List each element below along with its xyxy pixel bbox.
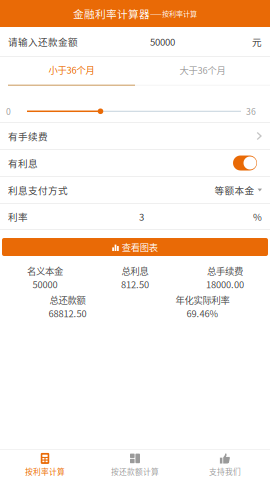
staticText: 36 (246, 105, 256, 117)
staticText: 68812.50 (48, 306, 86, 320)
button[interactable]: 按还款额计算 (90, 453, 180, 477)
staticText: 18000.00 (206, 277, 244, 291)
staticText: 等额本金 (215, 183, 255, 197)
staticText: 812.50 (121, 277, 149, 291)
staticText: 0 (6, 105, 11, 117)
staticText: 按利率计算 (25, 466, 65, 477)
staticText: 69.46% (186, 306, 218, 320)
staticText: 请输入还款金额 (8, 34, 78, 48)
button[interactable]: 按利率计算 (0, 453, 90, 477)
staticText: % (253, 209, 262, 223)
button[interactable]: 支持我们 (180, 453, 270, 477)
staticText: 小于36个月 (48, 63, 94, 76)
staticText: 年化实际利率 (175, 293, 229, 306)
staticText: 总还款额 (49, 293, 85, 306)
staticText: 50000 (150, 34, 175, 48)
staticText: 元 (252, 34, 262, 48)
staticText: 按还款额计算 (111, 466, 159, 477)
staticText: 利息支付方式 (8, 183, 68, 197)
staticText: 利率 (8, 209, 28, 223)
staticText: 名义本金 (27, 264, 63, 277)
staticText: 有利息 (8, 156, 38, 170)
staticText: 总利息 (121, 264, 148, 277)
button[interactable]: 大于36个月 (135, 55, 270, 86)
button[interactable]: 查看图表 (2, 238, 268, 256)
button[interactable]: 小于36个月 (0, 55, 135, 86)
button[interactable]: 利息支付方式 (0, 177, 270, 203)
staticText: 金融利率计算器 (73, 6, 150, 21)
staticText: 查看图表 (122, 240, 158, 254)
staticText: ——按利率计算 (150, 8, 197, 19)
staticText: 50000 (32, 277, 57, 291)
staticText: 有手续费 (8, 129, 48, 143)
staticText: 3 (139, 209, 144, 223)
staticText: 大于36个月 (179, 63, 225, 77)
button[interactable]: 有手续费 (0, 123, 270, 149)
button[interactable]: 有利息 (233, 155, 257, 170)
staticText: 支持我们 (209, 466, 241, 477)
staticText: 总手续费 (207, 264, 243, 277)
